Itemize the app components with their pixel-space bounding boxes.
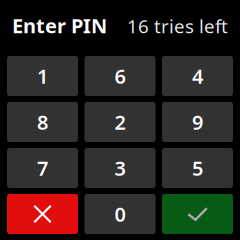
- staticText: 8: [37, 109, 48, 135]
- staticText: 1: [37, 63, 48, 89]
- button[interactable]: 0: [84, 194, 155, 234]
- staticText: 7: [37, 155, 48, 181]
- button[interactable]: 8: [7, 102, 78, 142]
- button[interactable]: 1: [7, 56, 78, 96]
- button[interactable]: 6: [84, 56, 155, 96]
- staticText: 2: [114, 109, 125, 135]
- staticText: 16 tries left: [127, 14, 228, 38]
- button[interactable]: Confirm: [162, 194, 233, 234]
- staticText: 9: [192, 109, 203, 135]
- button[interactable]: 9: [162, 102, 233, 142]
- button[interactable]: Cancel: [7, 194, 78, 234]
- staticText: 5: [192, 155, 203, 181]
- staticText: Enter PIN: [12, 12, 107, 39]
- staticText: 0: [114, 201, 125, 227]
- staticText: 4: [192, 63, 203, 89]
- button[interactable]: 4: [162, 56, 233, 96]
- button[interactable]: 2: [84, 102, 155, 142]
- button[interactable]: 5: [162, 148, 233, 188]
- button[interactable]: 7: [7, 148, 78, 188]
- staticText: 3: [114, 155, 125, 181]
- staticText: 6: [114, 63, 125, 89]
- button[interactable]: 3: [84, 148, 155, 188]
